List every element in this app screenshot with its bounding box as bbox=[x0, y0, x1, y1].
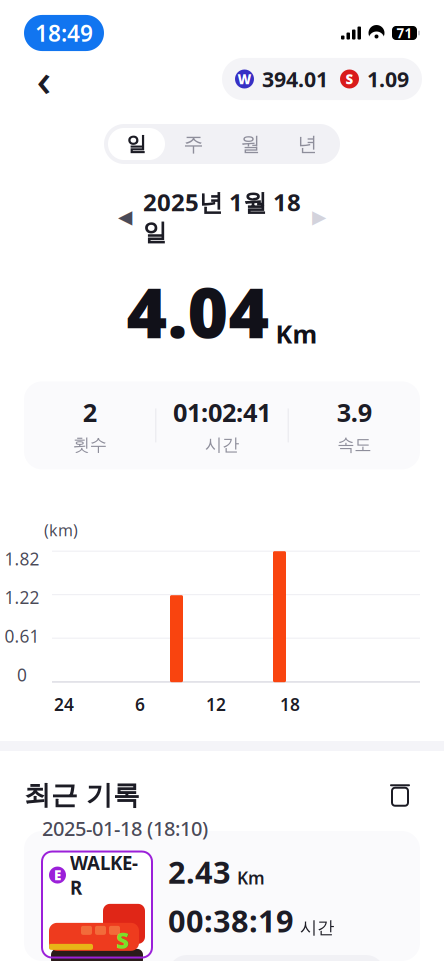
staticText: W bbox=[237, 70, 251, 88]
staticText: 394.01 bbox=[262, 65, 328, 93]
staticText: 2025년 1월 18일 bbox=[143, 186, 301, 247]
staticText: (km) bbox=[44, 519, 78, 541]
button[interactable]: 월 bbox=[222, 128, 279, 160]
staticText: WALKER bbox=[70, 850, 138, 900]
staticText: E bbox=[54, 866, 61, 884]
staticText: 2.43 bbox=[168, 852, 231, 892]
staticText: 12 bbox=[206, 693, 226, 716]
button[interactable]: W bbox=[222, 58, 422, 100]
staticText: 3.9 bbox=[337, 395, 372, 429]
staticText: 4.04 bbox=[126, 265, 269, 357]
staticText: S bbox=[116, 925, 129, 955]
button[interactable]: 주 bbox=[165, 128, 222, 160]
staticText: 횟수 bbox=[73, 434, 107, 455]
staticText: 주 bbox=[183, 132, 203, 156]
button[interactable]: 일 bbox=[108, 128, 165, 160]
staticText: 01:02:41 bbox=[173, 395, 271, 429]
staticText: 18:49 bbox=[35, 18, 93, 48]
staticText: 71 bbox=[396, 24, 412, 42]
button[interactable]: Delete records bbox=[380, 775, 420, 815]
staticText: ▶ bbox=[312, 206, 326, 227]
button[interactable]: Previous day bbox=[108, 200, 142, 234]
staticText: 1.09 bbox=[367, 65, 409, 93]
button[interactable]: 년 bbox=[279, 128, 336, 160]
staticText: 0 bbox=[17, 663, 27, 686]
staticText: 1.82 bbox=[4, 547, 39, 570]
staticText: 월 bbox=[240, 132, 260, 156]
staticText: 1.22 bbox=[4, 586, 39, 609]
button[interactable]: 2025-01-18 (18:10) bbox=[24, 831, 420, 961]
staticText: 속도 bbox=[337, 434, 371, 455]
button[interactable]: Back bbox=[22, 57, 66, 101]
staticText: 6 bbox=[135, 693, 145, 716]
staticText: 00:38:19 bbox=[168, 900, 294, 941]
staticText: 2025-01-18 (18:10) bbox=[42, 815, 208, 842]
staticText: 시간 bbox=[205, 434, 239, 455]
staticText: 년 bbox=[297, 132, 317, 156]
staticText: 24 bbox=[54, 693, 74, 716]
staticText: Km bbox=[237, 866, 265, 889]
staticText: ‹ bbox=[36, 49, 51, 109]
staticText: ◀ bbox=[118, 206, 132, 227]
staticText: 일 bbox=[126, 132, 146, 156]
staticText: 0.61 bbox=[4, 624, 39, 647]
staticText: 최근 기록 bbox=[24, 779, 140, 811]
button[interactable]: Next day bbox=[302, 200, 336, 234]
staticText: 18 bbox=[280, 693, 300, 716]
staticText: 시간 bbox=[300, 917, 334, 938]
staticText: 2 bbox=[83, 395, 97, 429]
staticText: Km bbox=[275, 317, 317, 350]
staticText: S bbox=[345, 70, 353, 88]
